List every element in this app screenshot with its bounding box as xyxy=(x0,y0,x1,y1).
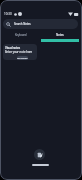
button[interactable]: New note xyxy=(34,149,45,160)
staticText: Keyboard xyxy=(15,33,27,37)
button[interactable]: GET STARTED xyxy=(17,56,28,60)
staticText: Notes xyxy=(56,33,64,37)
staticText: Enter your note here xyxy=(5,50,33,54)
staticText: Visual notes xyxy=(5,46,20,50)
button[interactable]: Notes xyxy=(41,33,79,42)
staticText: Search Notes xyxy=(14,22,31,26)
button[interactable]: Keyboard xyxy=(1,33,41,42)
button[interactable]: Search Notes xyxy=(3,19,78,29)
staticText: 10:30 xyxy=(4,12,12,16)
staticText: GET STARTED xyxy=(17,57,28,59)
button[interactable]: Visual notes xyxy=(3,44,37,60)
